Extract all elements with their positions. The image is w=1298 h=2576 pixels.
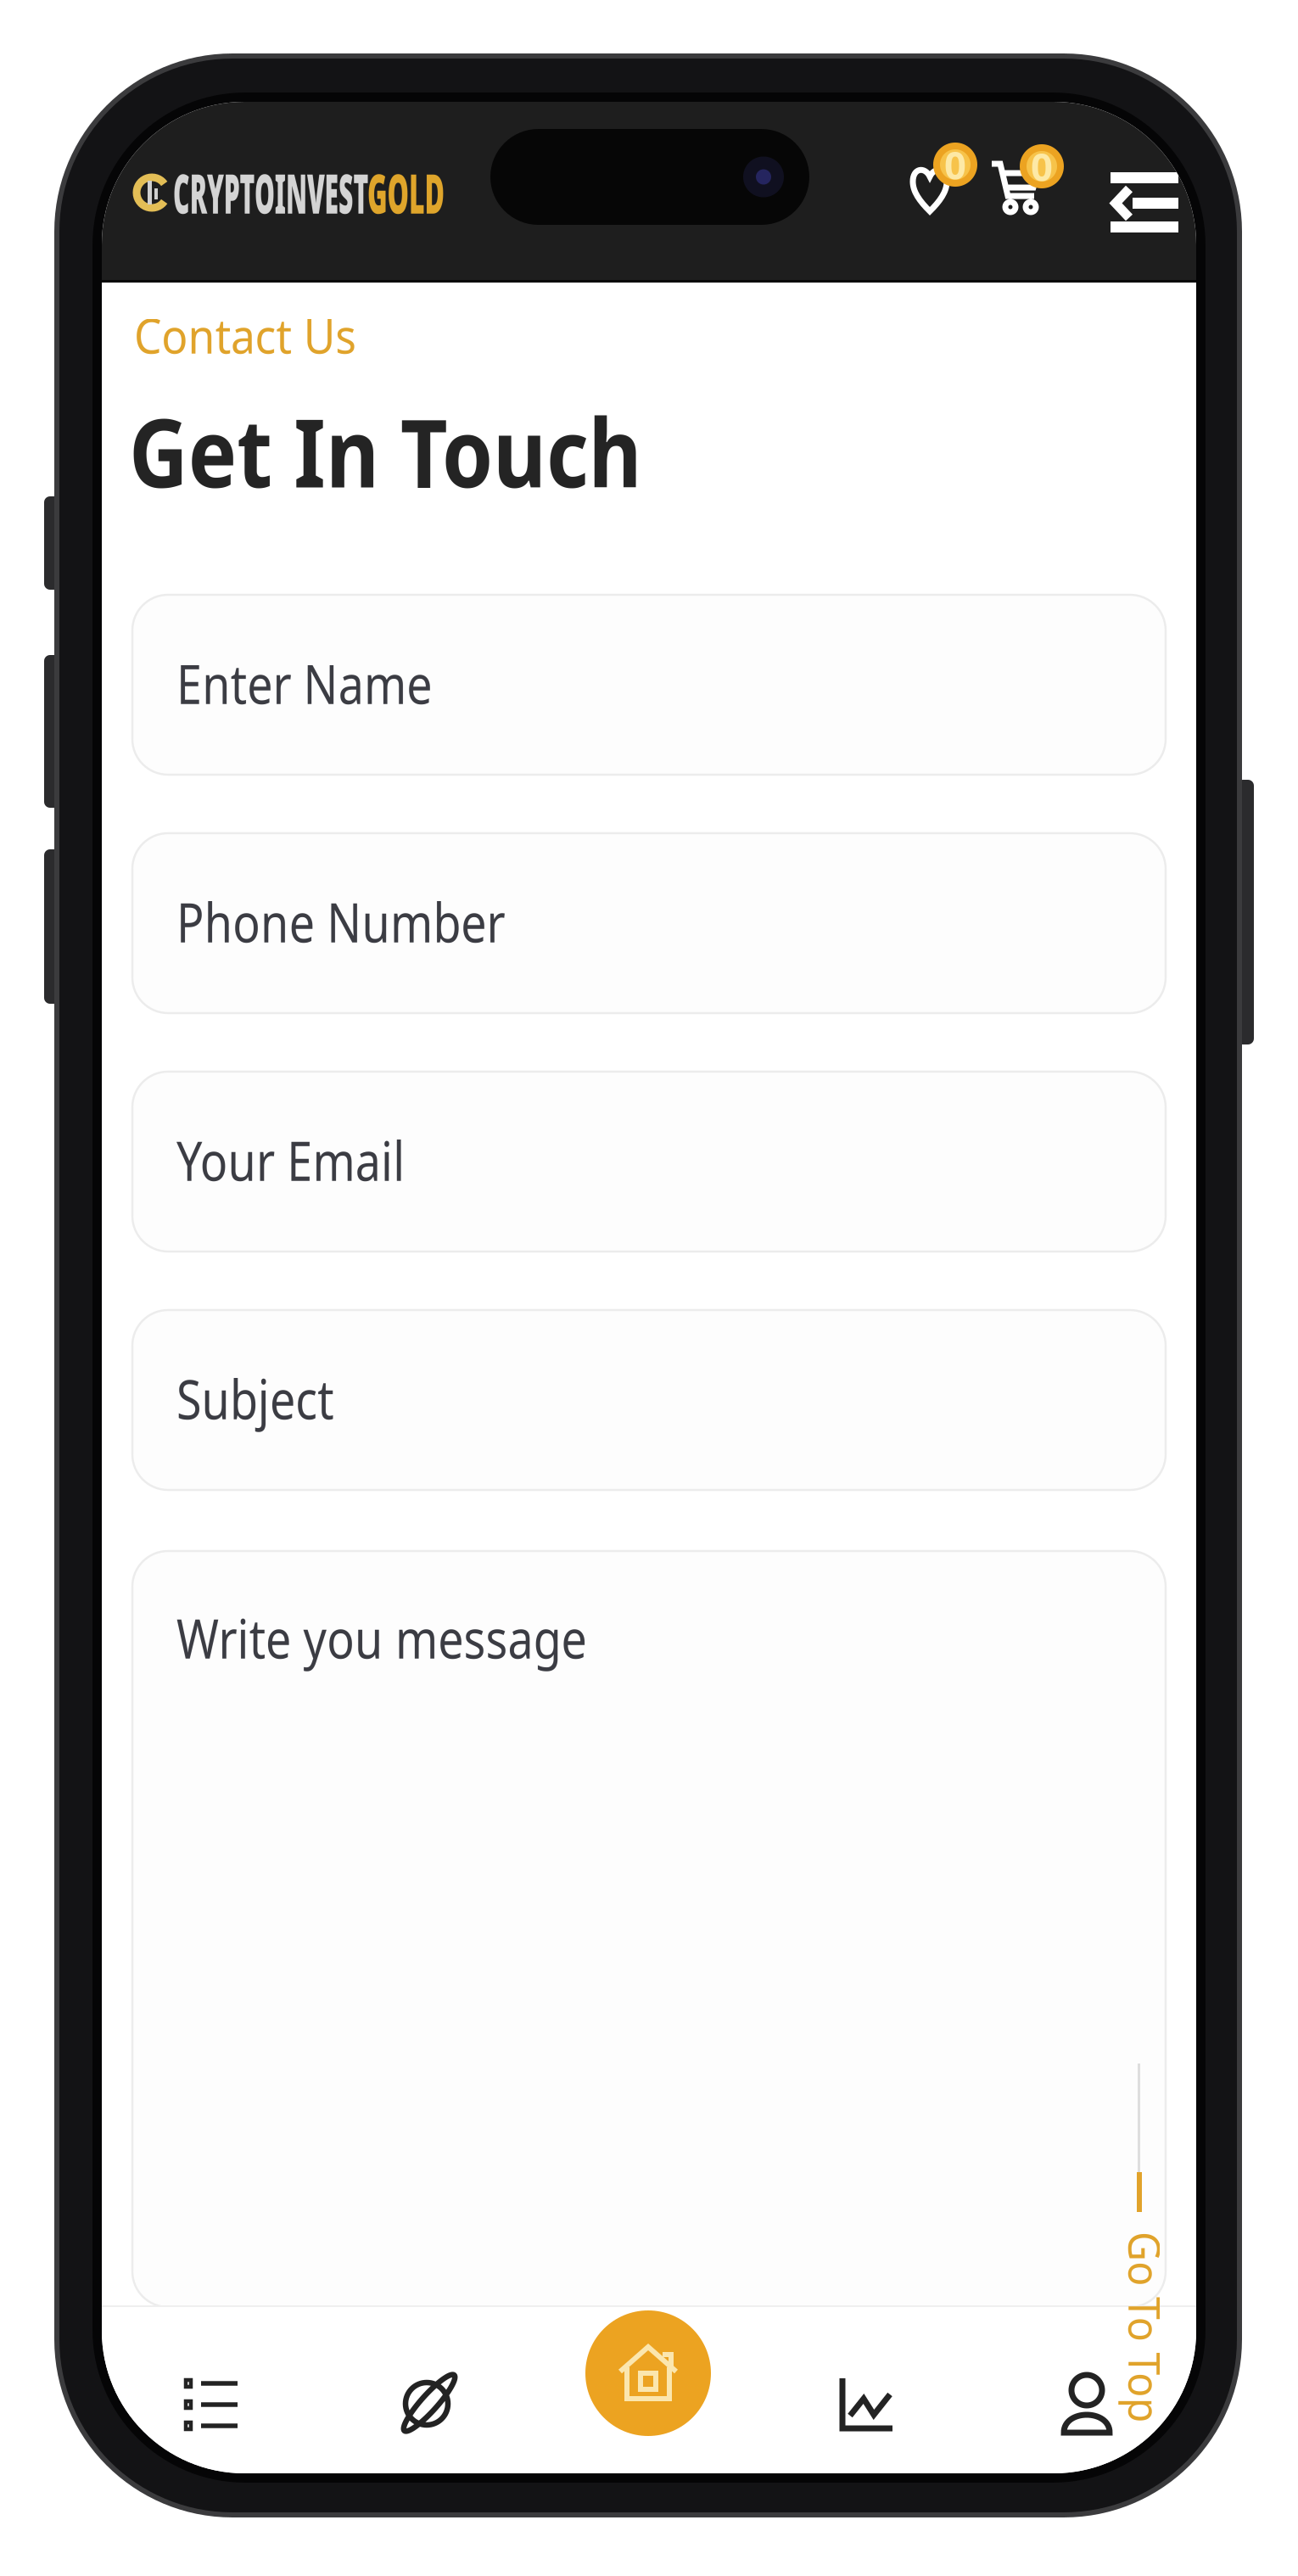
staticText: Write you message [176, 1602, 665, 1674]
button[interactable]: Market [790, 2328, 943, 2481]
button[interactable]: Subject [132, 1310, 1166, 1490]
staticText: 0 [944, 139, 966, 190]
button[interactable]: Categories [134, 2328, 287, 2481]
staticText: Contact Us [134, 304, 376, 367]
button[interactable]: Wishlist [909, 143, 982, 222]
button[interactable]: Write you message [132, 1551, 1166, 2307]
staticText: GOLD [367, 157, 522, 229]
staticText: Phone Number [176, 885, 568, 958]
button[interactable]: Enter Name [132, 595, 1166, 775]
button[interactable]: Menu [1110, 172, 1179, 232]
staticText: Go To Top [1018, 2330, 1219, 2387]
button[interactable]: Home [585, 2310, 711, 2436]
button[interactable]: Phone Number [132, 833, 1166, 1013]
staticText: CRYPTOINVEST [173, 157, 589, 229]
button[interactable]: Account [1010, 2327, 1163, 2480]
button[interactable]: CryptoInvestGold home [132, 167, 472, 218]
button[interactable]: Explore [353, 2327, 506, 2480]
staticText: Subject [176, 1362, 364, 1434]
staticText: 0 [1031, 141, 1053, 192]
button[interactable]: Your Email [132, 1072, 1166, 1252]
staticText: Get In Touch [129, 387, 725, 514]
button[interactable]: Go To Top [1121, 2064, 1298, 2437]
staticText: Your Email [176, 1124, 449, 1196]
button[interactable]: Cart [989, 143, 1067, 222]
staticText: Enter Name [176, 647, 481, 719]
